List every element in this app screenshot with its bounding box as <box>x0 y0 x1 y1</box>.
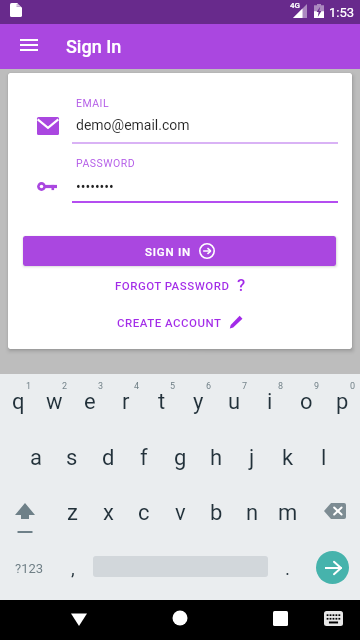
staticText: . <box>285 557 291 579</box>
button[interactable]: 7 <box>216 374 252 428</box>
staticText: e <box>84 389 96 415</box>
button[interactable]: x <box>90 486 126 540</box>
button[interactable]: CREATE ACCOUNT <box>111 312 249 332</box>
staticText: f <box>140 445 148 471</box>
button[interactable]: z <box>54 486 90 540</box>
staticText: c <box>138 500 150 526</box>
button[interactable]: 6 <box>180 374 216 428</box>
button[interactable]: Menu <box>6 24 50 69</box>
button[interactable]: 8 <box>252 374 288 428</box>
button[interactable]: FORGOT PASSWORD <box>109 272 252 298</box>
button[interactable]: a <box>18 431 54 485</box>
button[interactable]: j <box>234 431 270 485</box>
button[interactable]: s <box>54 431 90 485</box>
staticText: 5 <box>170 381 176 392</box>
staticText: i <box>267 389 273 415</box>
button[interactable]: SIGN IN <box>23 236 336 266</box>
button[interactable]: 3 <box>72 374 108 428</box>
staticText: ? <box>237 275 246 295</box>
staticText: d <box>102 445 115 471</box>
button[interactable]: Recent apps <box>259 600 303 640</box>
staticText: q <box>12 389 25 415</box>
button[interactable]: m <box>270 486 306 540</box>
staticText: ?123 <box>15 561 44 576</box>
button[interactable]: Switch keyboard <box>314 600 354 640</box>
staticText: CREATE ACCOUNT <box>117 316 222 329</box>
button[interactable]: f <box>126 431 162 485</box>
button[interactable]: Backspace <box>308 484 360 538</box>
button[interactable]: 9 <box>288 374 324 428</box>
staticText: y <box>193 389 204 415</box>
staticText: x <box>103 500 114 526</box>
button[interactable]: 5 <box>144 374 180 428</box>
button[interactable]: ?123 <box>0 540 56 600</box>
button[interactable]: Home <box>158 600 202 640</box>
staticText: w <box>46 389 63 415</box>
staticText: PASSWORD <box>76 157 136 169</box>
button[interactable]: . <box>268 540 306 600</box>
button[interactable]: 0 <box>324 374 360 428</box>
staticText: v <box>175 500 186 526</box>
staticText: 6 <box>206 381 212 392</box>
staticText: g <box>174 445 187 471</box>
staticText: EMAIL <box>76 97 110 109</box>
button[interactable]: v <box>162 486 198 540</box>
staticText: u <box>228 389 241 415</box>
button[interactable]: c <box>126 486 162 540</box>
staticText: , <box>71 557 75 579</box>
button[interactable]: n <box>234 486 270 540</box>
staticText: m <box>278 500 298 526</box>
staticText: 7 <box>242 381 248 392</box>
staticText: 4 <box>134 381 140 392</box>
button[interactable]: b <box>198 486 234 540</box>
staticText: a <box>30 445 42 471</box>
staticText: 3 <box>98 381 104 392</box>
staticText: b <box>210 500 223 526</box>
button[interactable]: Back <box>57 600 101 640</box>
staticText: t <box>158 389 166 415</box>
button[interactable]: Shift <box>0 486 54 540</box>
staticText: 4G <box>290 1 300 10</box>
staticText: Sign In <box>66 36 122 57</box>
staticText: SIGN IN <box>145 245 192 258</box>
staticText: j <box>249 445 255 471</box>
staticText: s <box>66 445 78 471</box>
button[interactable]: , <box>56 540 93 600</box>
button[interactable]: 1 <box>0 374 36 428</box>
staticText: k <box>282 445 294 471</box>
button[interactable]: h <box>198 431 234 485</box>
staticText: z <box>67 500 78 526</box>
button[interactable]: k <box>270 431 306 485</box>
staticText: p <box>336 389 349 415</box>
button[interactable]: d <box>90 431 126 485</box>
staticText: 9 <box>314 381 320 392</box>
button[interactable]: 2 <box>36 374 72 428</box>
button[interactable]: Enter <box>316 551 349 584</box>
staticText: l <box>321 445 327 471</box>
button[interactable]: 4 <box>108 374 144 428</box>
staticText: 8 <box>278 381 284 392</box>
staticText: n <box>246 500 259 526</box>
staticText: r <box>122 389 130 415</box>
staticText: 0 <box>350 381 356 392</box>
staticText: FORGOT PASSWORD <box>115 279 230 292</box>
staticText: o <box>300 389 313 415</box>
button[interactable]: g <box>162 431 198 485</box>
staticText: 1:53 <box>329 5 355 20</box>
button[interactable]: l <box>306 431 342 485</box>
staticText: 1 <box>26 381 32 392</box>
staticText: 2 <box>62 381 68 392</box>
staticText: •••••••• <box>76 179 114 195</box>
staticText: h <box>210 445 223 471</box>
staticText: demo@email.com <box>76 117 190 133</box>
